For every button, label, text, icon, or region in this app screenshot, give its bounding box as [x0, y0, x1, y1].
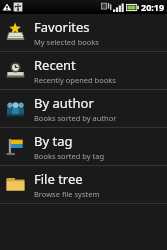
button[interactable]: File tree — [0, 166, 167, 203]
button[interactable]: Favorites — [0, 14, 167, 51]
button[interactable]: By author — [0, 90, 167, 127]
staticText: Browse file system — [34, 189, 100, 199]
button[interactable]: By tag — [0, 128, 167, 165]
staticText: By tag — [34, 132, 73, 150]
button[interactable]: Recent — [0, 52, 167, 89]
staticText: My selected books — [34, 37, 99, 47]
staticText: File tree — [34, 170, 83, 188]
staticText: 20:19 — [141, 1, 165, 13]
staticText: Favorites — [34, 18, 90, 36]
staticText: Recently opened books — [34, 75, 116, 85]
staticText: Recent — [34, 56, 76, 74]
staticText: By author — [34, 94, 94, 112]
staticText: Books sorted by tag — [34, 151, 104, 161]
staticText: Books sorted by author — [34, 113, 117, 123]
